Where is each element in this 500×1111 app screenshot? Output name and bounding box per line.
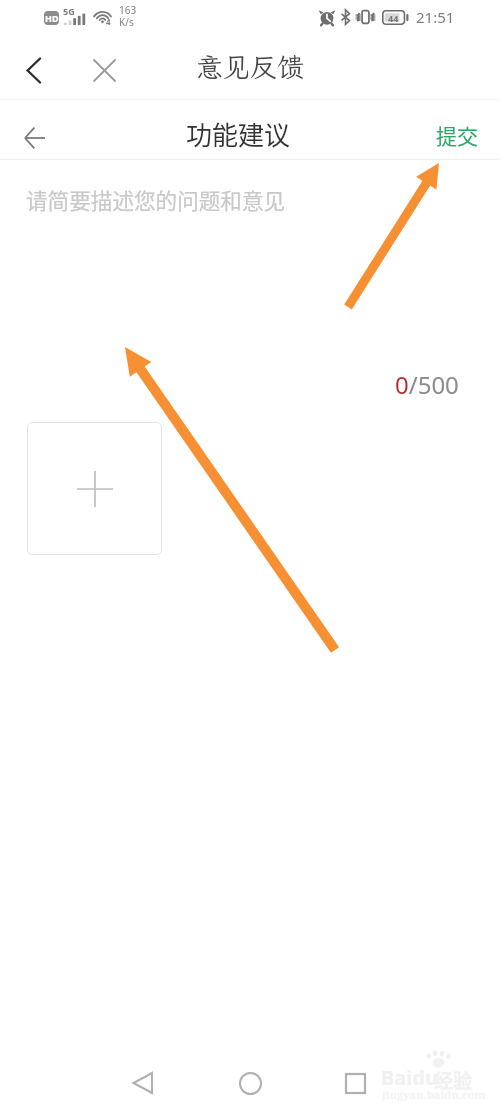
button[interactable]: Back	[8, 44, 60, 96]
staticText: 提交	[436, 120, 478, 150]
staticText: 21:51	[416, 7, 455, 27]
staticText: 5G	[63, 5, 75, 17]
staticText: Baidu	[381, 1064, 438, 1091]
staticText: 经验	[434, 1066, 473, 1094]
staticText: 4	[106, 16, 111, 27]
staticText: 163	[119, 3, 137, 17]
button[interactable]: Recent apps	[329, 1057, 381, 1109]
button[interactable]: 提交	[414, 106, 500, 164]
button[interactable]: Home	[224, 1057, 276, 1109]
button[interactable]: Back	[116, 1057, 168, 1109]
staticText: 功能建议	[186, 115, 291, 153]
button[interactable]: Close	[78, 44, 130, 96]
staticText: 44	[388, 12, 399, 24]
staticText: K/s	[119, 15, 134, 29]
button[interactable]: Back	[9, 112, 61, 164]
button[interactable]: Add photo	[27, 422, 162, 555]
staticText: jingyan.baidu.com	[382, 1087, 486, 1102]
staticText: 请简要描述您的问题和意见	[26, 184, 286, 215]
staticText: 0/500	[395, 368, 459, 401]
staticText: 意见反馈	[196, 49, 304, 85]
staticText: HD	[45, 12, 59, 24]
